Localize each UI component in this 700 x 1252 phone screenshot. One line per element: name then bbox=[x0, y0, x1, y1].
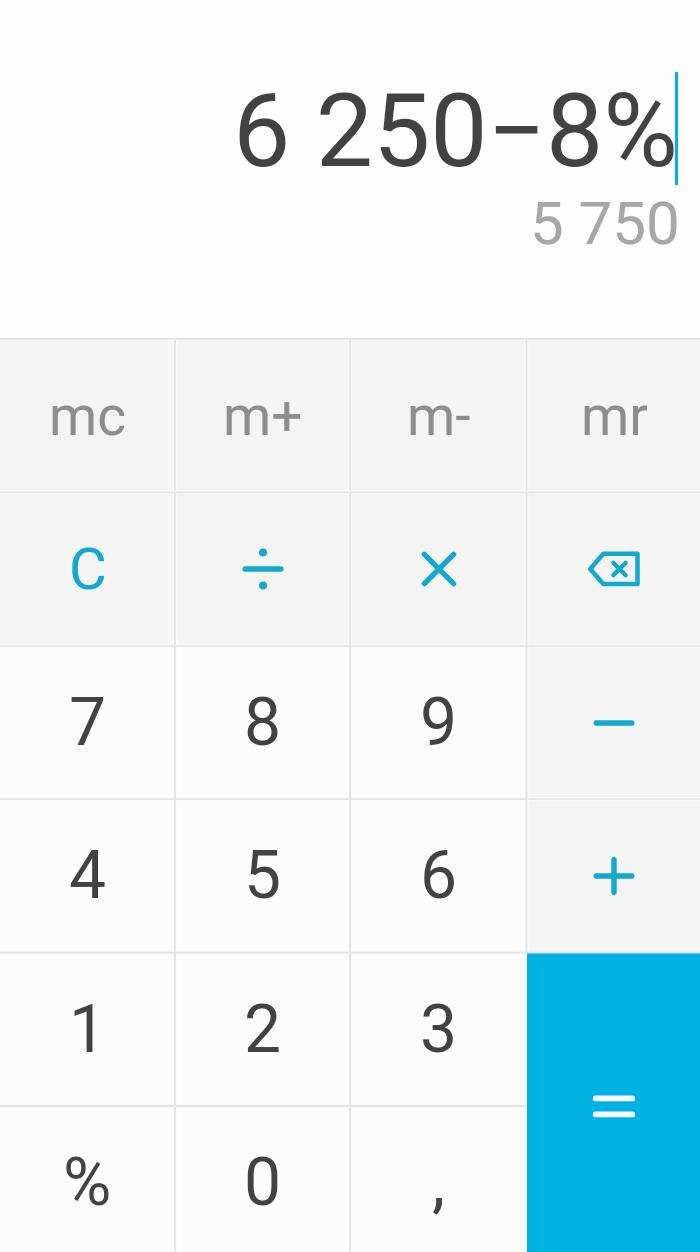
button[interactable]: 7 bbox=[0, 646, 175, 799]
staticText: m- bbox=[407, 384, 471, 448]
staticText: mc bbox=[49, 384, 127, 448]
staticText: 1 bbox=[69, 991, 107, 1068]
staticText: mr bbox=[581, 384, 648, 448]
button[interactable]: 6 bbox=[350, 799, 527, 952]
button[interactable]: Minus bbox=[527, 646, 700, 799]
button[interactable]: Backspace bbox=[527, 492, 700, 645]
staticText: , bbox=[432, 1144, 445, 1221]
staticText: 0 bbox=[244, 1144, 282, 1221]
button[interactable]: 4 bbox=[0, 799, 175, 952]
button[interactable]: 9 bbox=[350, 646, 527, 799]
button[interactable]: Multiply bbox=[350, 492, 527, 645]
button[interactable]: 0 bbox=[175, 1106, 350, 1252]
staticText: 2 bbox=[244, 991, 282, 1068]
button[interactable]: 3 bbox=[350, 953, 527, 1106]
button[interactable]: Plus bbox=[527, 799, 700, 952]
staticText: 7 bbox=[69, 684, 107, 761]
button[interactable]: m- bbox=[350, 339, 527, 492]
button[interactable]: 2 bbox=[175, 953, 350, 1106]
button[interactable]: Equals bbox=[527, 953, 700, 1252]
staticText: m+ bbox=[223, 384, 303, 448]
staticText: 6 bbox=[420, 837, 458, 914]
staticText: % bbox=[63, 1144, 112, 1221]
button[interactable]: C bbox=[0, 492, 175, 645]
staticText: 3 bbox=[420, 991, 458, 1068]
button[interactable]: 5 bbox=[175, 799, 350, 952]
staticText: 8 bbox=[244, 684, 282, 761]
staticText: 9 bbox=[420, 684, 458, 761]
button[interactable]: mc bbox=[0, 339, 175, 492]
button[interactable]: % bbox=[0, 1106, 175, 1252]
staticText: 5 bbox=[244, 837, 282, 914]
staticText: 5 750 bbox=[530, 188, 680, 258]
staticText: 4 bbox=[69, 837, 107, 914]
button[interactable]: 8 bbox=[175, 646, 350, 799]
button[interactable]: 1 bbox=[0, 953, 175, 1106]
button[interactable]: , bbox=[350, 1106, 527, 1252]
button[interactable]: mr bbox=[527, 339, 700, 492]
staticText: 6 250−8% bbox=[233, 71, 678, 191]
button[interactable]: m+ bbox=[175, 339, 350, 492]
button[interactable]: Divide bbox=[175, 492, 350, 645]
staticText: C bbox=[69, 535, 107, 603]
